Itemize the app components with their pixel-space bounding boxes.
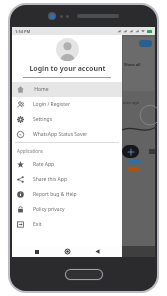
staticText: 1:54 PM [15,29,31,34]
button[interactable]: Home [62,246,73,257]
button[interactable]: Login / Register [12,97,122,112]
button[interactable]: Report bug & Help [12,187,122,202]
staticText: Login to your account [29,64,106,74]
button[interactable]: Policy privacy [12,202,122,217]
staticText: utes ago [123,100,140,105]
staticText: Applications [17,148,43,154]
button[interactable]: Settings [12,112,122,127]
staticText: Settings [33,116,53,123]
staticText: Exit [33,221,42,228]
button[interactable]: Exit [12,217,122,232]
button[interactable]: Rate App [12,157,122,172]
staticText: Home [33,86,49,93]
button[interactable]: Recent apps [31,246,42,257]
button[interactable]: Share this App [12,172,122,187]
staticText: Share this App [33,176,67,183]
staticText: WhatsApp Status Saver [33,131,88,138]
staticText: Report bug & Help [33,191,77,198]
staticText: Rate App [33,161,55,168]
staticText: Policy privacy [33,206,65,213]
staticText: Login / Register [33,101,70,108]
staticText: Show all [124,62,141,67]
button[interactable]: Back [92,246,103,257]
button[interactable]: WhatsApp Status Saver [12,127,122,142]
button[interactable]: Home [12,82,122,97]
